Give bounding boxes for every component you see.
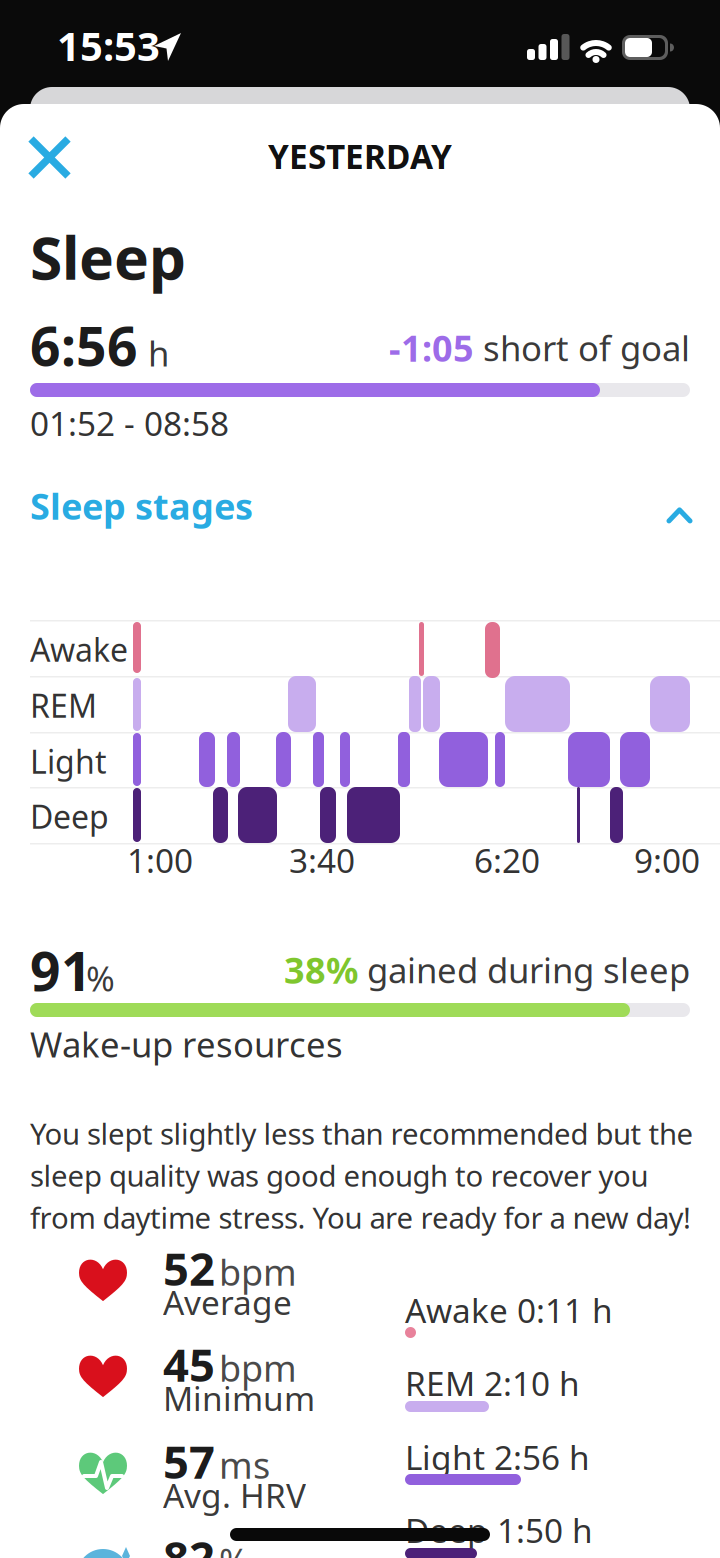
staticText: Average <box>163 1280 292 1324</box>
staticText: Sleep stages <box>30 482 253 530</box>
staticText: bpm <box>219 1248 297 1296</box>
staticText: REM 2:10 h <box>405 1361 580 1405</box>
button[interactable]: Sleep stages <box>30 482 690 530</box>
staticText: Avg. HRV <box>163 1473 306 1517</box>
staticText: 52 <box>163 1238 215 1298</box>
staticText: Deep 1:50 h <box>405 1508 593 1552</box>
staticText: 9:00 <box>634 838 700 882</box>
staticText: 91 <box>30 935 92 1006</box>
staticText: 45 <box>163 1334 215 1394</box>
staticText: 01:52 - 08:58 <box>30 401 229 445</box>
staticText: ms <box>219 1441 270 1489</box>
staticText: h <box>148 330 169 376</box>
staticText: 15:53 <box>57 19 160 72</box>
staticText: 38% <box>284 946 358 994</box>
staticText: 57 <box>163 1431 215 1491</box>
staticText: Light 2:56 h <box>405 1435 590 1479</box>
staticText: Light <box>30 740 107 782</box>
staticText: 3:40 <box>289 838 355 882</box>
staticText: Wake-up resources <box>30 1021 343 1067</box>
staticText: % <box>219 1537 249 1558</box>
button[interactable]: Close <box>19 127 80 188</box>
staticText: Minimum <box>163 1376 315 1420</box>
staticText: short of goal <box>474 325 690 371</box>
staticText: YESTERDAY <box>268 134 452 178</box>
staticText: % <box>86 955 115 1001</box>
staticText: bpm <box>219 1344 297 1392</box>
staticText: 6:20 <box>474 838 540 882</box>
staticText: Sleep <box>30 218 186 296</box>
staticText: 6:56 <box>30 310 138 381</box>
staticText: You slept slightly less than recommended… <box>30 1114 693 1237</box>
staticText: Deep <box>30 795 109 837</box>
staticText: gained during sleep <box>358 947 690 993</box>
staticText: REM <box>30 684 97 726</box>
staticText: -1:05 <box>389 324 474 372</box>
staticText: 1:00 <box>127 838 193 882</box>
staticText: Awake 0:11 h <box>405 1288 613 1332</box>
staticText: 82 <box>163 1527 215 1558</box>
staticText: Awake <box>30 628 128 670</box>
